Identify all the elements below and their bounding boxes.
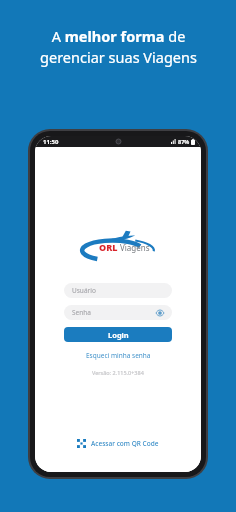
button[interactable]: Esqueci minha senha — [82, 350, 155, 361]
staticText: Versão: 2.115.0+384 — [92, 369, 144, 376]
staticText: Usuário — [72, 286, 96, 295]
staticText: Viagens — [120, 242, 150, 253]
button[interactable]: QR Code — [71, 436, 165, 451]
staticText: ORL — [99, 241, 118, 253]
other: QR Code — [77, 439, 86, 448]
button[interactable]: Login — [64, 327, 172, 342]
staticText: Login — [108, 330, 129, 340]
button[interactable]: Usuário — [64, 283, 172, 298]
button[interactable]: Mostrar senha — [155, 308, 164, 317]
staticText: 11:50 — [43, 138, 59, 146]
staticText: A melhor forma de gerenciar suas Viagens — [40, 26, 197, 68]
staticText: Esqueci minha senha — [86, 351, 151, 360]
staticText: Senha — [72, 308, 91, 317]
staticText: 87% — [178, 138, 190, 145]
button[interactable]: Senha — [64, 305, 172, 320]
staticText: Acessar com QR Code — [91, 439, 159, 448]
